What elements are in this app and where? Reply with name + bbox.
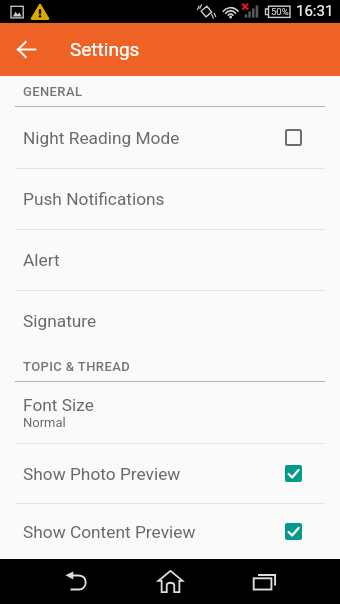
staticText: Show Content Preview [23, 522, 196, 542]
staticText: Show Photo Preview [23, 464, 181, 484]
staticText: GENERAL [23, 84, 83, 99]
button[interactable]: Alert [0, 230, 340, 291]
staticText: Night Reading Mode [23, 128, 180, 148]
staticText: Push Notifications [23, 189, 165, 209]
button[interactable]: Push Notifications [0, 169, 340, 230]
staticText: 16:31 [296, 2, 334, 20]
button[interactable]: Show Content Preview [0, 504, 340, 559]
staticText: TOPIC & THREAD [23, 359, 131, 374]
button[interactable]: Signature [0, 291, 340, 351]
button[interactable]: Night Reading Mode [0, 107, 340, 169]
staticText: Normal [23, 415, 66, 430]
button[interactable]: Back [0, 23, 52, 76]
button[interactable]: Home [147, 559, 193, 604]
button[interactable]: Show Photo Preview [0, 444, 340, 504]
staticText: Alert [23, 250, 60, 270]
button[interactable]: Recent apps [241, 559, 288, 604]
staticText: Settings [70, 38, 140, 60]
staticText: 50% [271, 6, 289, 17]
staticText: Font Size [23, 395, 94, 415]
staticText: Signature [23, 311, 97, 331]
button[interactable]: Back [53, 559, 100, 604]
button[interactable]: Font Size [0, 382, 340, 444]
